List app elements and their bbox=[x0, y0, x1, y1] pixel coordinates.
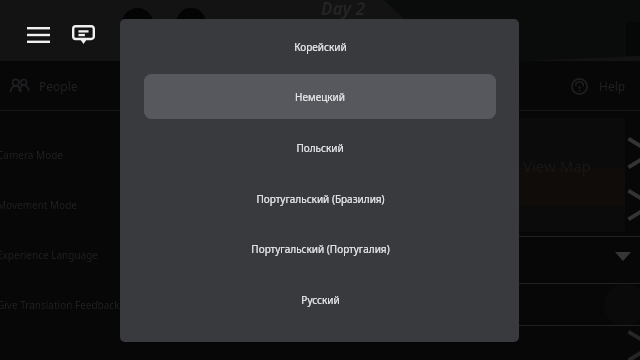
button[interactable]: Русский bbox=[144, 277, 496, 322]
staticText: People bbox=[39, 78, 78, 94]
button[interactable]: Experience Language bbox=[0, 230, 519, 280]
button[interactable]: Help bbox=[571, 61, 633, 111]
button[interactable]: Open bbox=[620, 135, 640, 171]
button[interactable]: People bbox=[9, 61, 99, 111]
button[interactable]: Португальский (Португалия) bbox=[144, 226, 496, 271]
button[interactable]: Give Translation Feedback bbox=[0, 280, 519, 330]
button[interactable]: Open bbox=[620, 187, 640, 223]
button[interactable]: Португальский (Бразилия) bbox=[144, 176, 496, 221]
button[interactable]: Menu bbox=[19, 16, 57, 54]
button[interactable]: Messages bbox=[64, 15, 102, 53]
staticText: Корейский bbox=[294, 40, 347, 54]
staticText: Португальский (Бразилия) bbox=[256, 192, 385, 206]
staticText: Give Translation Feedback bbox=[0, 298, 120, 312]
staticText: Camera Mode bbox=[0, 148, 63, 162]
staticText: Movement Mode bbox=[0, 198, 77, 212]
button[interactable]: Movement Mode bbox=[0, 180, 519, 230]
staticText: Немецкий bbox=[295, 90, 345, 104]
staticText: Experience Language bbox=[0, 248, 98, 262]
staticText: View Map bbox=[523, 156, 591, 176]
staticText: Польский bbox=[296, 141, 344, 155]
staticText: Day 2 bbox=[321, 0, 366, 20]
button[interactable]: Open bbox=[620, 328, 640, 360]
button[interactable]: Camera Mode bbox=[0, 130, 519, 180]
staticText: Португальский (Португалия) bbox=[251, 242, 390, 256]
staticText: Русский bbox=[301, 293, 340, 307]
button[interactable]: Немецкий bbox=[144, 74, 496, 119]
button[interactable]: Польский bbox=[144, 125, 496, 170]
staticText: Help bbox=[599, 78, 626, 94]
button[interactable]: Корейский bbox=[144, 24, 496, 69]
button[interactable]: Expand bbox=[608, 241, 638, 271]
